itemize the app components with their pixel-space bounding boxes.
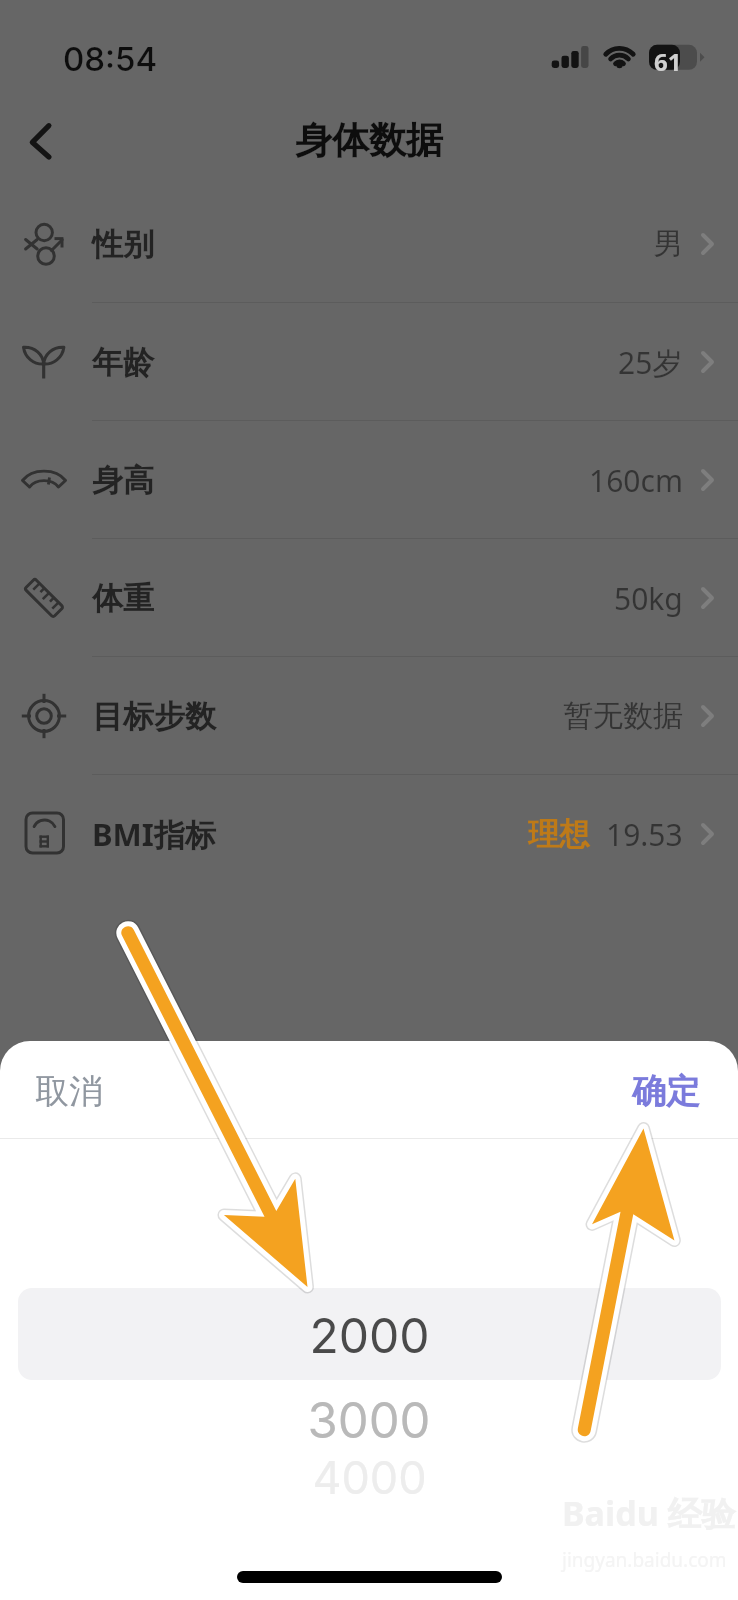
staticText: 19.53 bbox=[606, 814, 683, 855]
button[interactable]: 年龄 bbox=[0, 303, 738, 421]
button[interactable]: 确定 bbox=[612, 1061, 720, 1122]
button[interactable]: 身高 bbox=[0, 421, 738, 539]
staticText: 性别 bbox=[92, 225, 154, 264]
staticText: 身体数据 bbox=[295, 117, 443, 164]
staticText: 25岁 bbox=[618, 342, 683, 383]
button[interactable]: 体重 bbox=[0, 539, 738, 657]
staticText: 目标步数 bbox=[92, 697, 216, 736]
staticText: 61 bbox=[654, 45, 682, 78]
staticText: jingyan.baidu.com bbox=[562, 1547, 727, 1573]
button[interactable]: 性别 bbox=[0, 185, 738, 303]
staticText: 08:54 bbox=[63, 39, 158, 79]
staticText: 暂无数据 bbox=[563, 697, 683, 735]
button[interactable]: 取消 bbox=[15, 1061, 123, 1122]
staticText: 取消 bbox=[35, 1070, 103, 1113]
staticText: 2000 bbox=[309, 1306, 430, 1364]
staticText: 3000 bbox=[307, 1391, 431, 1450]
staticText: 50kg bbox=[614, 578, 683, 619]
staticText: 160cm bbox=[589, 460, 683, 501]
staticText: 体重 bbox=[92, 579, 154, 618]
button[interactable]: 目标步数 bbox=[0, 657, 738, 775]
staticText: 年龄 bbox=[92, 343, 154, 382]
staticText: 4000 bbox=[312, 1450, 427, 1504]
staticText: 理想 bbox=[528, 815, 590, 854]
staticText: Baidu 经验 bbox=[562, 1490, 736, 1536]
button[interactable]: Back bbox=[6, 106, 78, 178]
button[interactable]: BMI指标 bbox=[0, 775, 738, 893]
staticText: 身高 bbox=[92, 461, 154, 500]
staticText: 男 bbox=[653, 225, 683, 263]
staticText: 确定 bbox=[632, 1070, 700, 1113]
staticText: BMI指标 bbox=[92, 813, 216, 855]
